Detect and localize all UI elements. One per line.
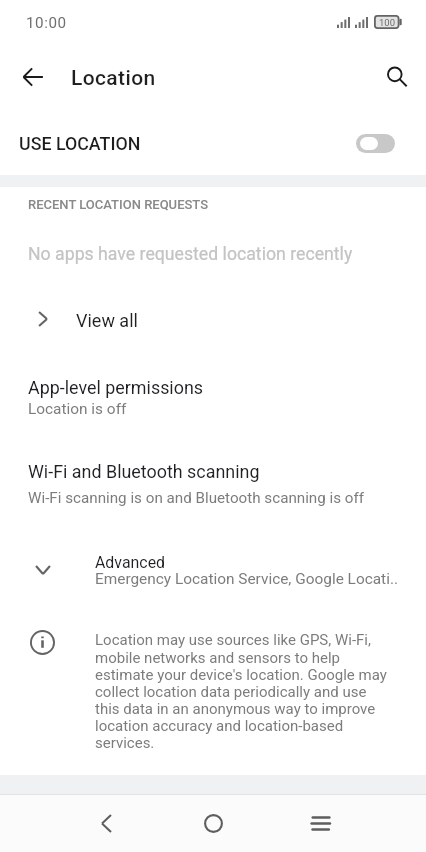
button[interactable]: Back bbox=[13, 57, 53, 97]
staticText: App-level permissions bbox=[28, 377, 204, 398]
staticText: View all bbox=[76, 310, 138, 331]
staticText: No apps have requested location recently bbox=[28, 244, 353, 265]
staticText: Emergency Location Service, Google Locat… bbox=[95, 570, 399, 588]
button[interactable]: Home bbox=[185, 795, 241, 852]
button[interactable]: Advanced bbox=[0, 542, 426, 598]
button[interactable]: Back bbox=[78, 795, 134, 852]
staticText: Location is off bbox=[28, 400, 127, 418]
staticText: Wi-Fi and Bluetooth scanning bbox=[28, 461, 260, 482]
staticText: Location may use sources like GPS, Wi-Fi… bbox=[95, 631, 394, 751]
button[interactable]: Recent apps bbox=[292, 795, 348, 852]
staticText: 100 bbox=[379, 17, 396, 28]
button[interactable]: App-level permissions bbox=[0, 366, 426, 428]
staticText: 10:00 bbox=[26, 14, 67, 32]
staticText: Location bbox=[71, 66, 156, 91]
staticText: USE LOCATION bbox=[19, 133, 141, 154]
button[interactable]: Wi-Fi and Bluetooth scanning bbox=[0, 450, 426, 512]
button[interactable]: Search bbox=[377, 57, 417, 97]
staticText: Advanced bbox=[95, 553, 166, 572]
button[interactable]: View all bbox=[0, 292, 426, 348]
staticText: RECENT LOCATION REQUESTS bbox=[28, 197, 209, 212]
button[interactable]: USE LOCATION bbox=[0, 108, 426, 175]
staticText: Wi-Fi scanning is on and Bluetooth scann… bbox=[28, 489, 365, 507]
